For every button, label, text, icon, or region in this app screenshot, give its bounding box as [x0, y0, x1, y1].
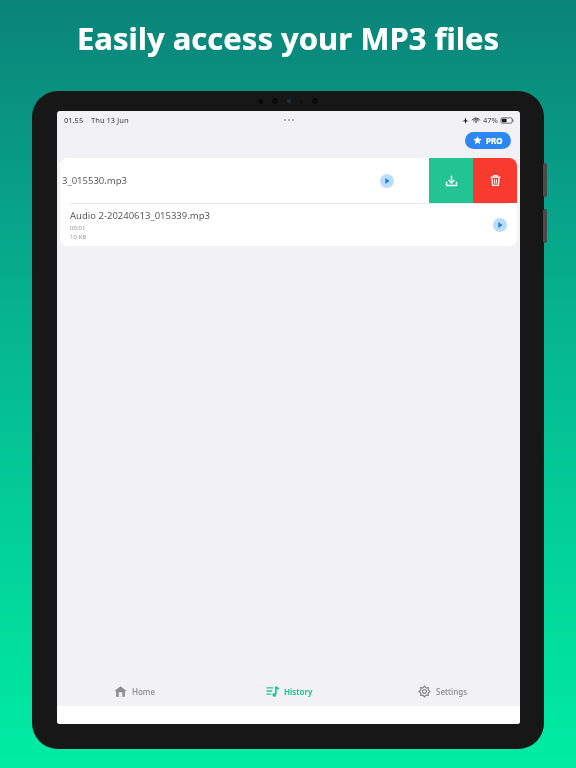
button[interactable]: Delete	[473, 158, 517, 203]
staticText: Home	[132, 686, 156, 697]
button[interactable]: 3_015530.mp3	[60, 158, 517, 203]
button[interactable]: Home	[57, 676, 212, 706]
staticText: 10 KB	[70, 233, 87, 241]
button[interactable]: Settings	[366, 676, 520, 706]
staticText: Settings	[436, 686, 468, 697]
staticText: 00:01	[70, 224, 86, 232]
staticText: PRO	[486, 135, 503, 146]
button[interactable]: Audio 2-20240613_015339.mp3	[60, 204, 517, 246]
button[interactable]: PRO	[465, 132, 511, 149]
button[interactable]: Play	[493, 218, 507, 232]
staticText: 3_015530.mp3	[62, 174, 127, 187]
button[interactable]: Play	[380, 174, 394, 188]
staticText: 47%	[483, 115, 498, 125]
staticText: Thu 13 Jun	[91, 115, 129, 125]
staticText: Easily access your MP3 files	[77, 17, 499, 59]
staticText: History	[284, 686, 313, 697]
staticText: Audio 2-20240613_015339.mp3	[70, 209, 210, 222]
staticText: 01.55	[64, 115, 84, 125]
button[interactable]: Save	[429, 158, 473, 203]
button[interactable]: History	[212, 676, 366, 706]
